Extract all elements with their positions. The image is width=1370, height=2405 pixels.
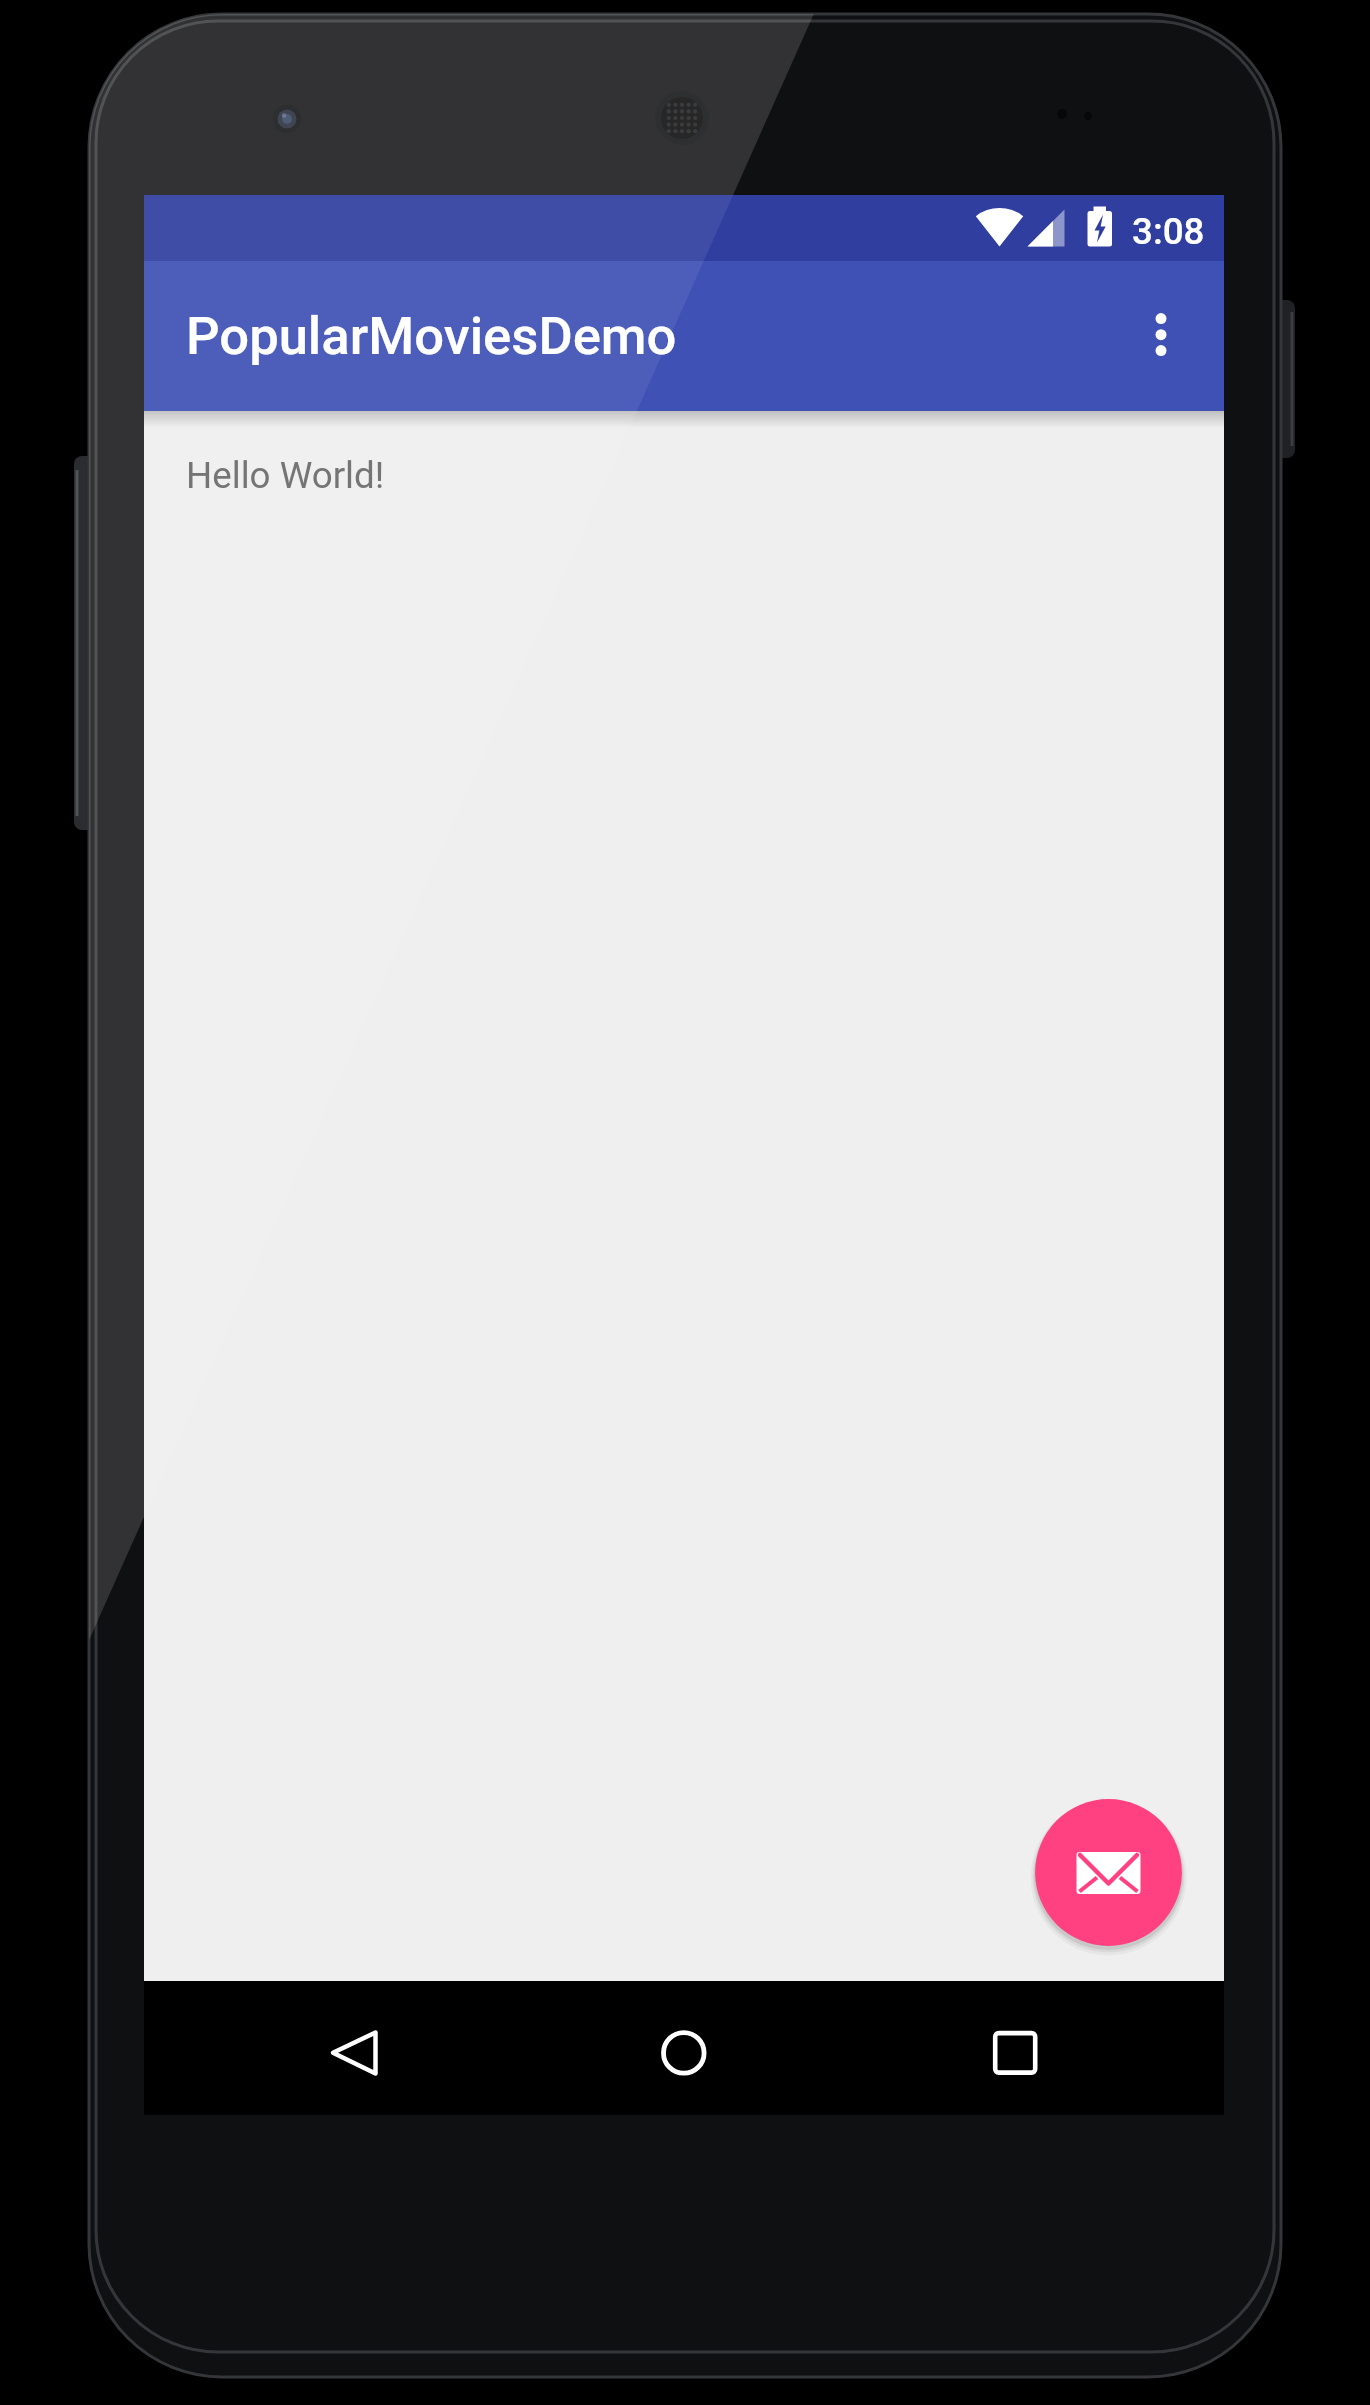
button[interactable] <box>1128 291 1194 367</box>
staticText: 3:08 <box>1132 210 1205 253</box>
staticText: Hello World! <box>186 454 385 497</box>
staticText: PopularMoviesDemo <box>186 305 677 367</box>
button[interactable] <box>594 1981 774 2115</box>
button[interactable] <box>925 1981 1105 2115</box>
button[interactable] <box>1035 1799 1182 1946</box>
button[interactable] <box>264 1981 444 2115</box>
